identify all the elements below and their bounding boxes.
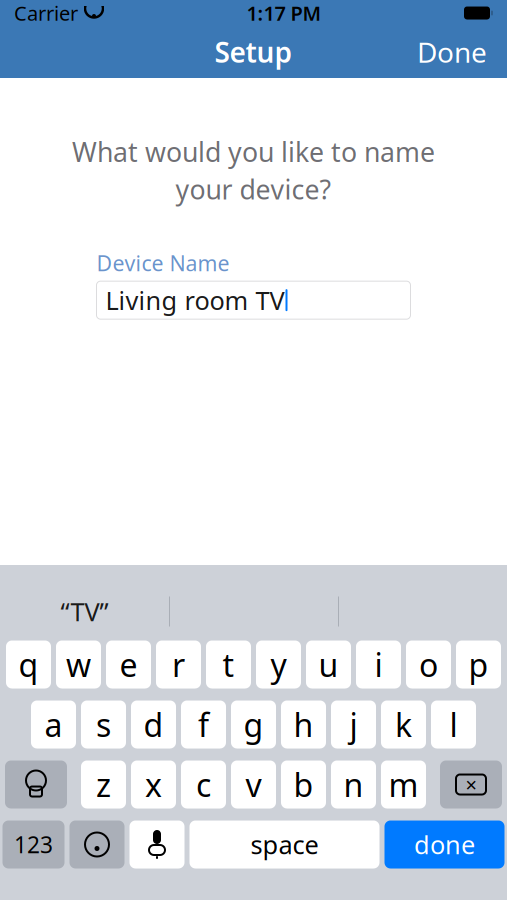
button[interactable]: m	[381, 760, 426, 808]
staticText: x	[145, 763, 162, 806]
button[interactable]: p	[456, 640, 501, 688]
button[interactable]: n	[331, 760, 376, 808]
button[interactable]: w	[56, 640, 101, 688]
staticText: “TV”	[60, 595, 108, 628]
staticText: m	[388, 763, 418, 806]
staticText: r	[172, 643, 185, 686]
button[interactable]: d	[131, 700, 176, 748]
staticText: Device Name	[96, 249, 229, 277]
staticText: d	[143, 703, 163, 746]
button[interactable]: z	[81, 760, 126, 808]
staticText: t	[222, 643, 234, 686]
staticText: Carrier	[14, 0, 78, 26]
staticText: Living room TV	[105, 283, 284, 317]
button[interactable]: o	[406, 640, 451, 688]
staticText: y	[270, 643, 286, 686]
button[interactable]: x	[131, 760, 176, 808]
button[interactable]: g	[231, 700, 276, 748]
staticText: o	[419, 643, 438, 686]
staticText: your device?	[175, 171, 331, 207]
staticText: b	[293, 763, 313, 806]
staticText: Done	[417, 33, 487, 71]
staticText: s	[96, 703, 111, 746]
staticText: z	[96, 763, 111, 806]
button[interactable]: q	[6, 640, 51, 688]
staticText: ×	[465, 771, 476, 798]
button[interactable]: h	[281, 700, 326, 748]
button[interactable]: j	[331, 700, 376, 748]
staticText: h	[293, 703, 313, 746]
button[interactable]: v	[231, 760, 276, 808]
staticText: j	[349, 703, 357, 746]
button[interactable]: “TV”	[0, 589, 169, 633]
staticText: f	[198, 703, 209, 746]
button[interactable]: Delete	[440, 760, 502, 808]
button[interactable]: done	[384, 820, 504, 868]
button[interactable]: e	[106, 640, 151, 688]
staticText: p	[468, 643, 488, 686]
staticText: 1:17 PM	[246, 0, 321, 26]
button[interactable]: a	[31, 700, 76, 748]
button[interactable]: f	[181, 700, 226, 748]
button[interactable]: l	[431, 700, 476, 748]
staticText: c	[196, 763, 211, 806]
button[interactable]: s	[81, 700, 126, 748]
staticText: What would you like to name	[72, 134, 435, 169]
staticText: v	[245, 763, 261, 806]
button[interactable]: Dictate	[129, 820, 184, 868]
button[interactable]: k	[381, 700, 426, 748]
staticText: k	[395, 703, 412, 746]
staticText: u	[318, 643, 338, 686]
button[interactable]: space	[189, 820, 379, 868]
button[interactable]: i	[356, 640, 401, 688]
staticText: a	[44, 703, 62, 746]
staticText: e	[119, 643, 137, 686]
staticText: l	[449, 703, 457, 746]
staticText: 123	[14, 829, 53, 859]
button[interactable]: Shift	[5, 760, 67, 808]
staticText: q	[18, 643, 38, 686]
button[interactable]: b	[281, 760, 326, 808]
button[interactable]: t	[206, 640, 251, 688]
button[interactable]: Done	[403, 23, 501, 81]
button[interactable]: r	[156, 640, 201, 688]
staticText: n	[343, 763, 363, 806]
button[interactable]: c	[181, 760, 226, 808]
staticText: g	[243, 703, 263, 746]
button[interactable]: u	[306, 640, 351, 688]
button[interactable]: 123	[2, 820, 64, 868]
button[interactable]: y	[256, 640, 301, 688]
staticText: space	[250, 828, 318, 861]
staticText: done	[414, 828, 475, 861]
button[interactable]: Emoji	[69, 820, 124, 868]
staticText: Setup	[214, 33, 292, 71]
staticText: i	[374, 643, 382, 686]
staticText: w	[66, 643, 91, 686]
